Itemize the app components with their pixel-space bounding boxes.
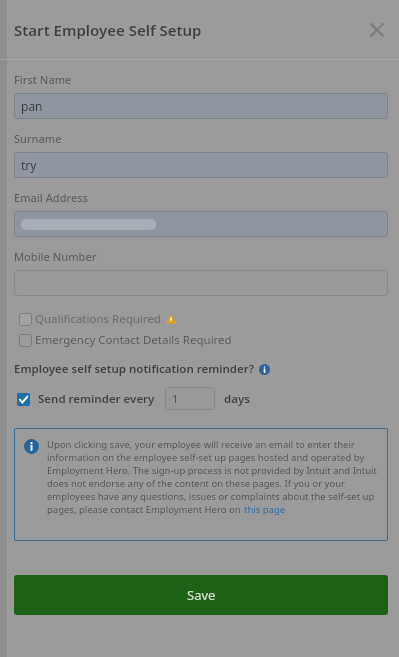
staticText: Emergency Contact Details Required bbox=[35, 332, 232, 348]
staticText: try bbox=[21, 157, 37, 173]
button[interactable]: Emergency Contact Details Required bbox=[14, 332, 232, 348]
staticText: Qualifications Required bbox=[35, 311, 161, 327]
button[interactable]: try bbox=[14, 152, 388, 178]
button[interactable]: this page bbox=[244, 503, 286, 516]
staticText: information on the employee self-set up … bbox=[47, 451, 365, 464]
button[interactable] bbox=[14, 211, 388, 237]
staticText: Send reminder every bbox=[38, 391, 155, 407]
staticText: days bbox=[224, 391, 250, 407]
button[interactable]: Start Employee Self Setup bbox=[14, 20, 202, 40]
button[interactable]: Qualifications Required bbox=[14, 311, 177, 327]
staticText: Start Employee Self Setup bbox=[14, 20, 202, 40]
button[interactable]: More information bbox=[259, 364, 270, 375]
staticText: pages, please contact Employment Hero on bbox=[47, 503, 244, 516]
staticText: Mobile Number bbox=[14, 249, 97, 264]
staticText: Upon clicking save, your employee will r… bbox=[47, 438, 355, 451]
staticText: pan bbox=[21, 98, 43, 114]
staticText: employees have any questions, issues or … bbox=[47, 490, 375, 503]
staticText: First Name bbox=[14, 72, 72, 87]
button[interactable]: Save bbox=[14, 575, 388, 615]
staticText: Employment Hero. The sign-up process is … bbox=[47, 464, 377, 477]
button[interactable] bbox=[14, 270, 388, 296]
button[interactable]: 1 bbox=[165, 387, 215, 410]
button[interactable]: pan bbox=[14, 93, 388, 119]
staticText: Surname bbox=[14, 131, 62, 146]
staticText: this page bbox=[244, 503, 286, 516]
staticText: Employee self setup notification reminde… bbox=[14, 361, 255, 377]
button[interactable]: Close bbox=[365, 18, 389, 42]
button[interactable]: Send reminder every bbox=[14, 391, 155, 407]
staticText: Save bbox=[187, 586, 216, 604]
staticText: does not endorse any of the content on t… bbox=[47, 477, 345, 490]
staticText: 1 bbox=[172, 391, 179, 407]
staticText: Email Address bbox=[14, 190, 88, 205]
